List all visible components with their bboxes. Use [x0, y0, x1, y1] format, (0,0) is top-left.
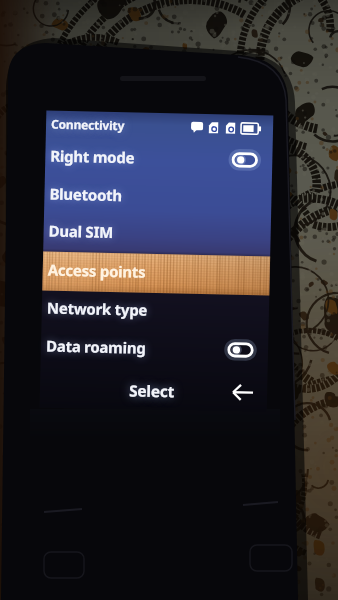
- button[interactable]: Dual SIM: [43, 211, 271, 254]
- button[interactable]: Bluetooth: [44, 174, 272, 217]
- button[interactable]: Network type: [41, 288, 269, 331]
- staticText: Connectivity: [51, 116, 125, 133]
- staticText: Access points: [48, 259, 146, 282]
- button[interactable]: Data roaming: [41, 326, 268, 369]
- staticText: Select: [129, 379, 175, 401]
- staticText: Dual SIM: [48, 220, 114, 242]
- staticText: Right mode: [50, 146, 134, 167]
- button[interactable]: Back: [228, 378, 256, 406]
- button[interactable]: Right mode: [45, 136, 273, 180]
- staticText: Data roaming: [46, 335, 146, 358]
- staticText: Network type: [47, 297, 148, 320]
- staticText: Bluetooth: [49, 184, 123, 205]
- button[interactable]: Select: [123, 375, 181, 405]
- button[interactable]: Access points: [42, 250, 270, 293]
